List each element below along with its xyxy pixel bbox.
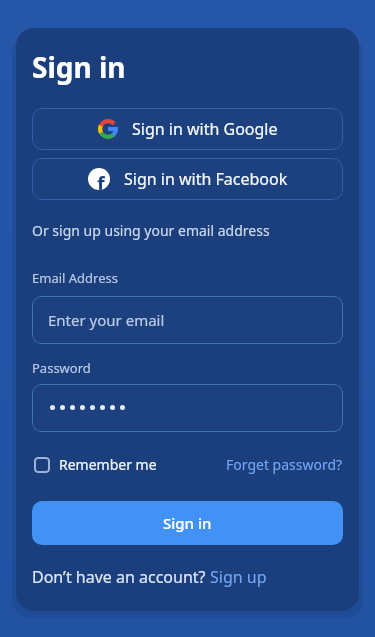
staticText: Sign in [32,48,126,86]
button[interactable]: f [32,158,343,200]
button[interactable]: Forget password? [226,455,343,474]
staticText: Sign in [163,513,212,533]
staticText: f [97,170,105,190]
button[interactable]: Remember me [32,455,157,474]
staticText: Enter your email [48,310,165,330]
button[interactable]: Sign up [210,566,267,588]
button[interactable]: Sign in with Google [32,108,343,150]
staticText: Don’t have an account? [32,566,210,588]
staticText: Password [32,359,91,377]
button[interactable]: Sign in [32,501,343,545]
staticText: Remember me [59,455,157,474]
button[interactable]: Enter your email [32,296,343,344]
staticText: Sign in with Google [132,118,278,140]
staticText: Sign in with Facebook [124,168,288,190]
staticText: Email Address [32,269,118,287]
staticText: Or sign up using your email address [32,221,270,240]
button[interactable] [32,384,343,432]
